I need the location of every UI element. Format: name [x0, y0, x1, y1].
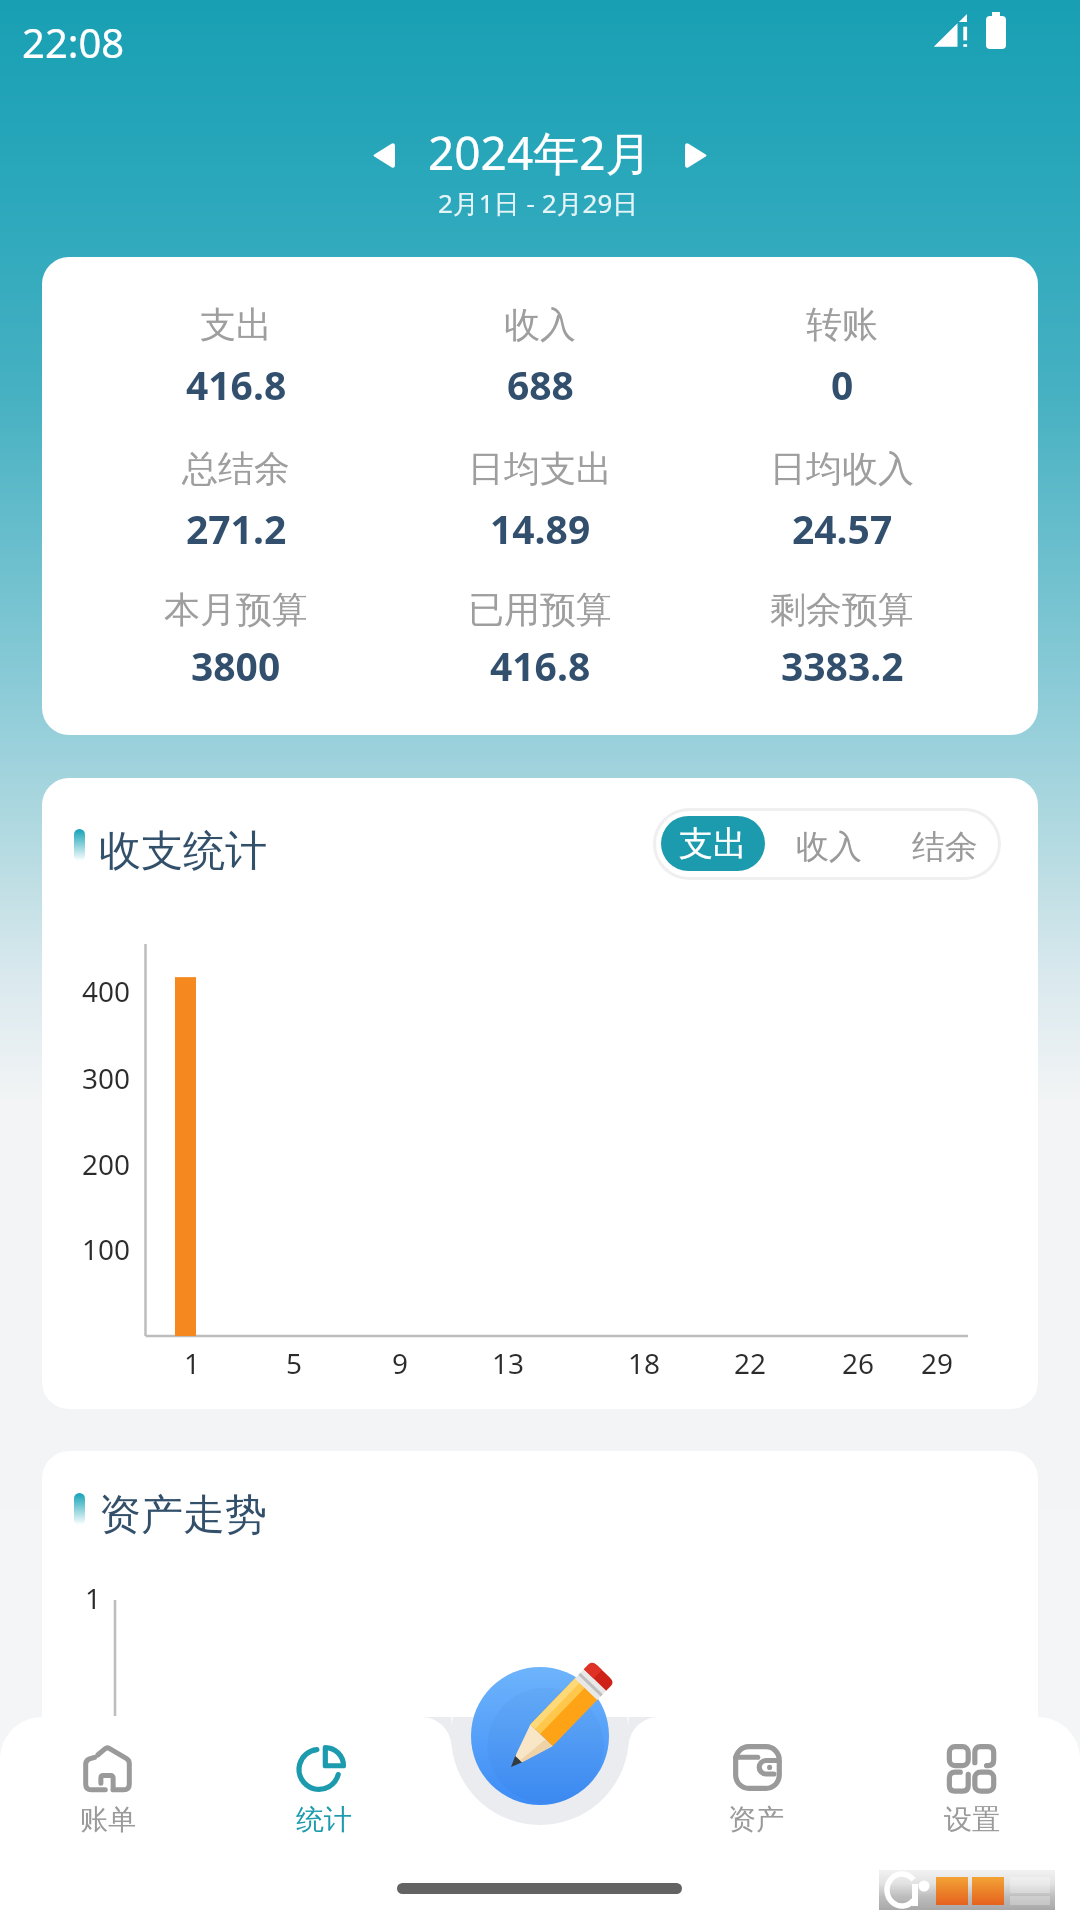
staticText: 资产走势 [99, 1489, 267, 1542]
button[interactable]: 支出 [42, 257, 1038, 735]
button[interactable]: Previous month [355, 127, 411, 183]
staticText: 416.8 [490, 639, 591, 692]
staticText: 688 [507, 358, 574, 411]
staticText: 设置 [944, 1802, 1000, 1837]
staticText: 1 [85, 1579, 102, 1617]
staticText: 3800 [191, 639, 281, 692]
staticText: 100 [82, 1230, 131, 1268]
staticText: 收入 [504, 302, 576, 347]
staticText: 收支统计 [99, 825, 267, 878]
staticText: 416.8 [186, 358, 287, 411]
staticText: 资产 [728, 1802, 784, 1837]
staticText: 统计 [296, 1802, 352, 1837]
staticText: 转账 [806, 302, 878, 347]
staticText: 3383.2 [781, 639, 904, 692]
staticText: 14.89 [490, 502, 591, 555]
staticText: 日均收入 [770, 446, 914, 491]
button[interactable]: Bills [28, 1738, 188, 1848]
staticText: 账单 [80, 1802, 136, 1837]
staticText: 9 [392, 1344, 409, 1382]
staticText: 400 [82, 972, 131, 1010]
button[interactable]: Statistics [244, 1738, 404, 1848]
staticText: 总结余 [182, 446, 290, 491]
staticText: 22 [734, 1344, 767, 1382]
button[interactable]: Add record [471, 1667, 609, 1805]
button[interactable]: 结余 [893, 819, 997, 874]
staticText: 22:08 [22, 15, 125, 69]
button[interactable]: 收入 [777, 819, 881, 874]
staticText: 18 [628, 1344, 661, 1382]
staticText: 支出 [200, 302, 272, 347]
staticText: 29 [921, 1344, 954, 1382]
staticText: 271.2 [186, 502, 287, 555]
staticText: 本月预算 [164, 587, 308, 632]
staticText: 已用预算 [468, 587, 612, 632]
staticText: 2月1日 - 2月29日 [438, 185, 639, 221]
button[interactable]: 支出 [661, 816, 765, 871]
staticText: 2024年2月 [428, 121, 652, 184]
button[interactable]: Next month [668, 127, 724, 183]
staticText: 0 [831, 358, 854, 411]
staticText: 支出 [679, 822, 747, 865]
staticText: 日均支出 [468, 446, 612, 491]
button[interactable]: Settings [892, 1738, 1052, 1848]
staticText: 结余 [912, 826, 978, 868]
staticText: 5 [286, 1344, 303, 1382]
staticText: 收入 [796, 826, 862, 868]
staticText: 200 [82, 1145, 131, 1183]
staticText: 24.57 [792, 502, 893, 555]
staticText: 13 [492, 1344, 525, 1382]
staticText: 300 [82, 1059, 131, 1097]
staticText: 剩余预算 [770, 587, 914, 632]
staticText: 1 [184, 1344, 201, 1382]
staticText: 26 [842, 1344, 875, 1382]
button[interactable]: Assets [676, 1738, 836, 1848]
